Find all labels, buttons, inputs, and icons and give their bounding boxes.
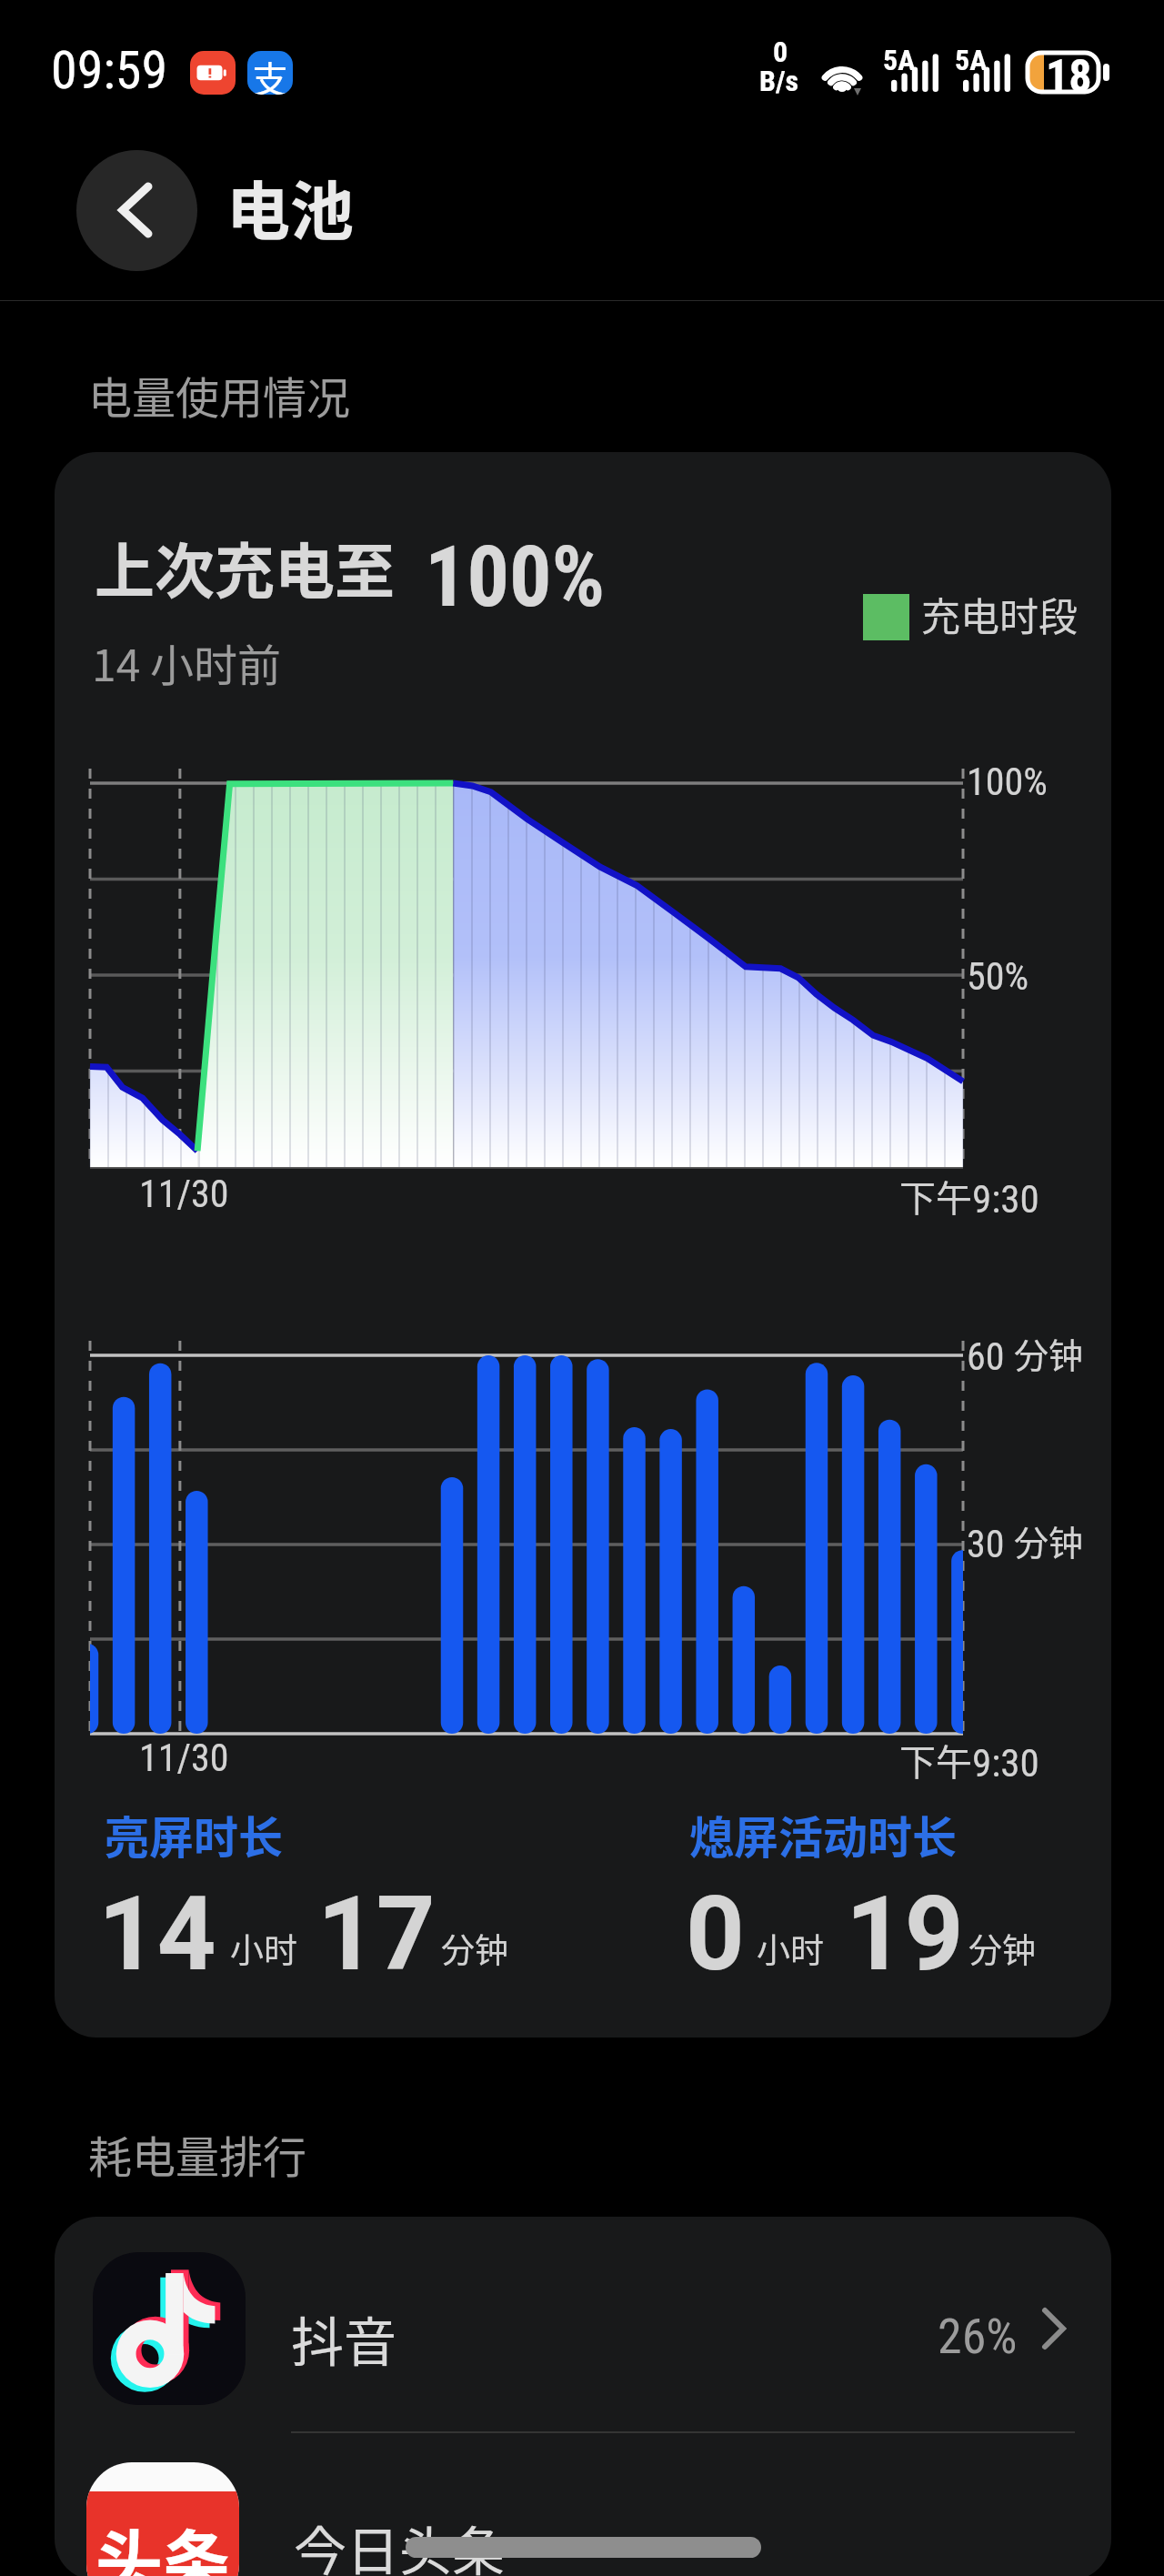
staticText: 60 <box>967 1334 1014 1379</box>
staticText: 0 <box>773 35 788 69</box>
staticText: 充电时段 <box>921 586 1078 642</box>
staticText: 今日头条 <box>294 2510 506 2576</box>
staticText: 30 <box>967 1522 1014 1566</box>
staticText: 9:30 <box>972 1176 1039 1222</box>
staticText: 分钟 <box>1014 1515 1084 1565</box>
staticText: 19 <box>846 1874 964 1994</box>
staticText: 头条 <box>95 2508 230 2576</box>
staticText: 分钟 <box>1014 1328 1084 1378</box>
staticText: 0 <box>686 1874 745 1994</box>
staticText: 分钟 <box>441 1924 508 1973</box>
staticText: 5A <box>883 43 916 77</box>
staticText: 上次充电至 <box>95 523 395 610</box>
staticText: 分钟 <box>968 1924 1036 1973</box>
staticText: 小时 <box>230 1924 297 1973</box>
staticText: 9:30 <box>972 1740 1039 1786</box>
staticText: 电量使用情况 <box>88 363 351 427</box>
staticText: 100% <box>967 760 1048 804</box>
staticText: 50% <box>967 954 1029 999</box>
staticText: 耗电量排行 <box>88 2122 307 2186</box>
staticText: 5A <box>955 43 988 77</box>
staticText: 亮屏时长 <box>105 1802 284 1867</box>
staticText: 100% <box>425 528 606 627</box>
button[interactable]: 头条 <box>55 2433 1111 2576</box>
staticText: 09:59 <box>51 39 168 101</box>
staticText: 下午 <box>899 1170 972 1223</box>
button[interactable]: 抖音 <box>55 2217 1111 2431</box>
button[interactable]: Back <box>76 150 197 271</box>
staticText: 11/30 <box>139 1172 229 1216</box>
staticText: 18 <box>1046 50 1092 104</box>
staticText: B/s <box>759 64 799 98</box>
staticText: 抖音 <box>291 2300 397 2377</box>
staticText: 26% <box>938 2308 1018 2365</box>
staticText: 17 <box>317 1874 436 1994</box>
staticText: 11/30 <box>139 1736 229 1780</box>
staticText: 下午 <box>899 1734 972 1786</box>
staticText: 电池 <box>226 161 354 253</box>
staticText: 14 <box>98 1874 216 1994</box>
staticText: 熄屏活动时长 <box>689 1802 958 1867</box>
staticText: 小时 <box>757 1924 824 1973</box>
staticText: 支 <box>252 51 288 95</box>
staticText: 14 小时前 <box>92 630 282 694</box>
